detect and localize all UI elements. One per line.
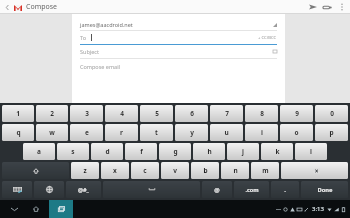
- button[interactable]: t: [140, 124, 173, 141]
- staticText: n: [233, 166, 238, 175]
- staticText: 1: [16, 109, 20, 118]
- staticText: 7: [225, 109, 229, 118]
- staticText: r: [120, 128, 123, 137]
- staticText: s: [71, 147, 75, 156]
- staticText: j: [242, 147, 244, 156]
- button[interactable]: Change language: [34, 181, 64, 198]
- staticText: z: [83, 166, 87, 175]
- button[interactable]: c: [131, 162, 159, 179]
- button[interactable]: b: [191, 162, 219, 179]
- staticText: d: [105, 147, 110, 156]
- button[interactable]: f: [125, 143, 157, 160]
- button[interactable]: Done: [301, 181, 348, 198]
- button[interactable]: Home: [28, 201, 44, 217]
- button[interactable]: To: [80, 31, 277, 44]
- staticText: 9: [295, 109, 299, 118]
- button[interactable]: Recent apps: [49, 200, 73, 218]
- button[interactable]: james@aacdroid.net: [80, 19, 277, 30]
- button[interactable]: d: [91, 143, 123, 160]
- staticText: w: [49, 128, 55, 137]
- button[interactable]: g: [159, 143, 191, 160]
- button[interactable]: 4: [105, 105, 138, 122]
- button[interactable]: @#_: [66, 181, 101, 198]
- staticText: .: [284, 186, 286, 194]
- button[interactable]: u: [210, 124, 243, 141]
- button[interactable]: Subject: [80, 45, 277, 58]
- button[interactable]: 5: [140, 105, 173, 122]
- button[interactable]: l: [295, 143, 327, 160]
- button[interactable]: o: [280, 124, 313, 141]
- button[interactable]: 1: [2, 105, 34, 122]
- button[interactable]: Back: [6, 201, 22, 217]
- staticText: Compose email: [80, 63, 120, 70]
- staticText: 3: [85, 109, 89, 118]
- button[interactable]: More options: [336, 1, 348, 13]
- staticText: james@aacdroid.net: [80, 21, 133, 28]
- button[interactable]: e: [70, 124, 103, 141]
- button[interactable]: s: [57, 143, 89, 160]
- staticText: Compose: [26, 2, 58, 12]
- button[interactable]: Backspace: [281, 162, 348, 179]
- button[interactable]: .com: [234, 181, 269, 198]
- staticText: k: [275, 147, 280, 156]
- button[interactable]: 8: [245, 105, 278, 122]
- button[interactable]: n: [221, 162, 249, 179]
- button[interactable]: h: [193, 143, 225, 160]
- button[interactable]: k: [261, 143, 293, 160]
- button[interactable]: q: [2, 124, 34, 141]
- button[interactable]: Keyboard settings: [2, 181, 32, 198]
- button[interactable]: w: [36, 124, 68, 141]
- button[interactable]: 9: [280, 105, 313, 122]
- staticText: y: [190, 128, 194, 137]
- staticText: q: [16, 128, 21, 137]
- staticText: @#_: [78, 186, 89, 193]
- button[interactable]: Shift: [2, 162, 69, 179]
- button[interactable]: p: [315, 124, 348, 141]
- staticText: To: [80, 34, 87, 41]
- staticText: x: [113, 166, 117, 175]
- staticText: h: [207, 147, 212, 156]
- button[interactable]: .: [271, 181, 299, 198]
- staticText: v: [173, 166, 177, 175]
- staticText: o: [294, 128, 299, 137]
- staticText: f: [140, 147, 143, 156]
- button[interactable]: 7: [210, 105, 243, 122]
- staticText: 0: [330, 109, 334, 118]
- button[interactable]: x: [101, 162, 129, 179]
- button[interactable]: m: [251, 162, 279, 179]
- button[interactable]: Compose email: [80, 59, 277, 103]
- staticText: 5: [155, 109, 159, 118]
- staticText: + CC/BCC: [258, 35, 277, 41]
- staticText: i: [261, 128, 263, 137]
- staticText: b: [203, 166, 208, 175]
- staticText: Subject: [80, 48, 99, 55]
- staticText: a: [37, 147, 41, 156]
- staticText: 8: [260, 109, 264, 118]
- staticText: m: [262, 166, 269, 175]
- button[interactable]: Gmail: [12, 2, 23, 13]
- staticText: 3:13: [312, 205, 324, 213]
- button[interactable]: 6: [175, 105, 208, 122]
- button[interactable]: v: [161, 162, 189, 179]
- button[interactable]: Space: [103, 181, 200, 198]
- button[interactable]: Send: [306, 0, 320, 14]
- button[interactable]: y: [175, 124, 208, 141]
- staticText: 4: [120, 109, 124, 118]
- button[interactable]: z: [71, 162, 99, 179]
- button[interactable]: i: [245, 124, 278, 141]
- button[interactable]: a: [23, 143, 55, 160]
- button[interactable]: 2: [36, 105, 68, 122]
- button[interactable]: @: [202, 181, 232, 198]
- staticText: l: [310, 147, 312, 156]
- button[interactable]: j: [227, 143, 259, 160]
- button[interactable]: 3: [70, 105, 103, 122]
- button[interactable]: 0: [315, 105, 348, 122]
- staticText: e: [85, 128, 89, 137]
- button[interactable]: r: [105, 124, 138, 141]
- staticText: 6: [190, 109, 194, 118]
- button[interactable]: Attach file: [320, 0, 334, 14]
- button[interactable]: Back: [2, 2, 12, 12]
- staticText: u: [224, 128, 229, 137]
- staticText: t: [155, 128, 158, 137]
- staticText: 2: [50, 109, 54, 118]
